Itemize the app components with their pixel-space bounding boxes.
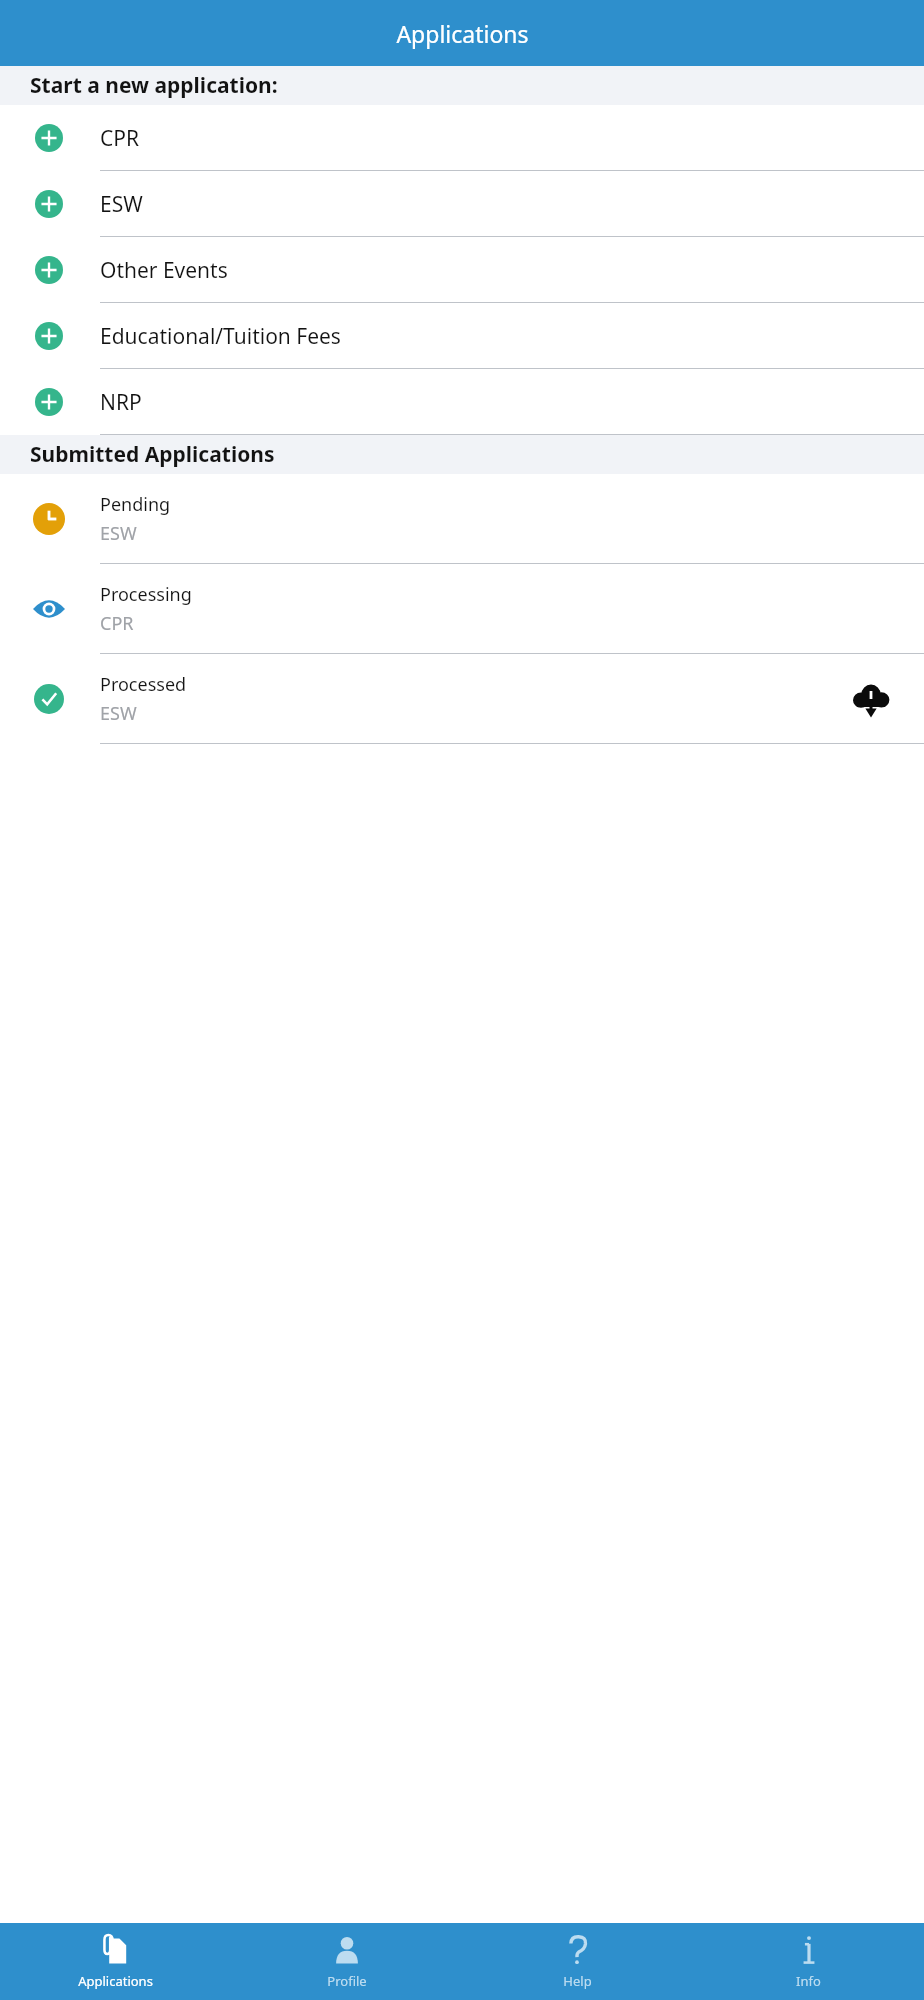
staticText: Processed [100,672,187,697]
button[interactable]: Applications [0,1923,231,2000]
button[interactable]: Info [693,1923,924,2000]
staticText: CPR [100,611,134,636]
staticText: Submitted Applications [30,440,275,469]
staticText: Info [796,1972,821,1990]
staticText: Applications [78,1972,153,1990]
button[interactable]: Profile [231,1923,462,2000]
button[interactable]: Processing [0,564,924,654]
button[interactable]: Pending [0,474,924,564]
button[interactable]: NRP [0,369,924,435]
staticText: Educational/Tuition Fees [100,322,341,351]
staticText: Processing [100,582,192,607]
staticText: Start a new application: [30,71,278,100]
staticText: Help [563,1972,592,1990]
staticText: NRP [100,388,142,417]
button[interactable]: CPR [0,105,924,171]
button[interactable]: Processed [0,654,924,744]
button[interactable]: Help [462,1923,693,2000]
button[interactable]: Other Events [0,237,924,303]
staticText: ESW [100,701,137,726]
staticText: ESW [100,521,137,546]
staticText: Applications [396,18,529,49]
button[interactable]: Educational/Tuition Fees [0,303,924,369]
staticText: Pending [100,492,171,517]
staticText: ESW [100,190,143,219]
staticText: Other Events [100,256,228,285]
staticText: Profile [327,1972,367,1990]
button[interactable]: ESW [0,171,924,237]
button[interactable]: Download [849,677,893,721]
staticText: CPR [100,124,140,153]
